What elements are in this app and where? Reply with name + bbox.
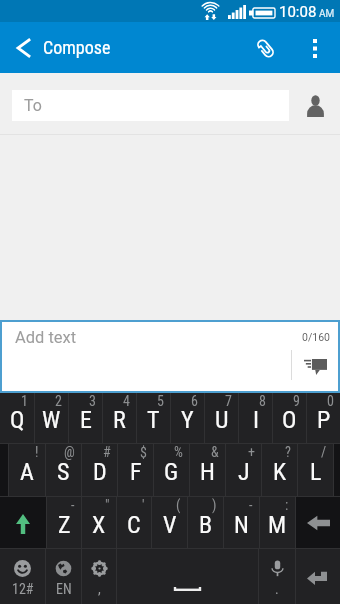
staticText: / (321, 444, 327, 460)
staticText: - (249, 497, 253, 513)
button[interactable]: 4 (103, 393, 136, 443)
button[interactable]: 6 (171, 393, 204, 443)
staticText: E (80, 406, 92, 434)
staticText: K (273, 458, 287, 486)
button[interactable]: - (224, 497, 259, 548)
staticText: 1 (21, 393, 28, 409)
button[interactable]: 0 (307, 393, 340, 443)
staticText: % (174, 444, 183, 460)
button[interactable]: % (154, 444, 189, 496)
staticText: 10:08 (279, 3, 317, 21)
staticText: N (234, 511, 249, 539)
button[interactable]: Attach (242, 22, 290, 73)
button[interactable]: Send message (291, 347, 339, 387)
button[interactable]: Shift (0, 497, 46, 548)
button[interactable]: Back (0, 22, 44, 73)
staticText: . (275, 581, 279, 597)
staticText: ( (176, 497, 181, 513)
button[interactable]: @ (46, 444, 81, 496)
button[interactable]: 2 (35, 393, 68, 443)
button[interactable]: ' (117, 497, 151, 548)
button[interactable]: 3 (69, 393, 102, 443)
staticText: , (98, 581, 101, 597)
button[interactable]: ) (188, 497, 223, 548)
button[interactable]: To (12, 90, 289, 121)
staticText: $ (140, 444, 147, 460)
staticText: H (200, 458, 215, 486)
button[interactable]: / (298, 444, 333, 496)
staticText: 9 (293, 393, 300, 409)
staticText: - (71, 497, 75, 513)
staticText: Compose (43, 37, 111, 58)
button[interactable]: & (190, 444, 225, 496)
button[interactable]: ( (152, 497, 187, 548)
staticText: 5 (157, 393, 164, 409)
staticText: J (238, 458, 250, 486)
button[interactable]: Language (46, 549, 81, 604)
button[interactable]: Enter (296, 549, 340, 604)
staticText: # (103, 444, 111, 460)
staticText: O (282, 406, 297, 434)
staticText: X (92, 511, 106, 539)
staticText: AM (319, 8, 335, 20)
staticText: ? (285, 444, 291, 460)
staticText: 4 (123, 393, 130, 409)
staticText: ' (142, 497, 145, 513)
button[interactable]: - (47, 497, 81, 548)
staticText: P (317, 406, 331, 434)
staticText: 0 (327, 393, 334, 409)
button[interactable]: Settings (82, 549, 116, 604)
button[interactable]: $ (118, 444, 153, 496)
button[interactable]: 8 (239, 393, 272, 443)
button[interactable]: Symbols (0, 549, 45, 604)
staticText: 6 (191, 393, 198, 409)
staticText: T (147, 406, 160, 434)
staticText: M (268, 511, 287, 539)
staticText: Y (181, 406, 194, 434)
button[interactable]: " (82, 497, 116, 548)
button[interactable]: Pick contact (291, 88, 340, 121)
button[interactable]: + (226, 444, 261, 496)
button[interactable]: : (260, 497, 295, 548)
staticText: G (164, 458, 179, 486)
button[interactable]: # (82, 444, 117, 496)
staticText: : (285, 497, 289, 513)
button[interactable]: 1 (0, 393, 34, 443)
staticText: 8 (259, 393, 266, 409)
staticText: 7 (225, 393, 232, 409)
staticText: B (199, 511, 213, 539)
staticText: V (163, 511, 177, 539)
staticText: & (211, 444, 219, 460)
staticText: S (57, 458, 70, 486)
button[interactable]: Backspace (296, 497, 340, 548)
staticText: I (253, 406, 259, 434)
button[interactable]: 5 (137, 393, 170, 443)
staticText: Add text (15, 328, 77, 347)
staticText: + (248, 444, 255, 460)
button[interactable]: ! (9, 444, 45, 496)
staticText: U (215, 406, 229, 434)
staticText: Q (10, 406, 25, 434)
button[interactable]: Voice input (259, 549, 295, 604)
staticText: @ (64, 444, 75, 460)
button[interactable]: Add text (2, 322, 338, 391)
staticText: ! (35, 444, 39, 460)
staticText: " (105, 497, 110, 513)
staticText: L (310, 458, 322, 486)
button[interactable]: 9 (273, 393, 306, 443)
staticText: F (130, 458, 142, 486)
staticText: W (42, 406, 61, 434)
staticText: C (127, 511, 141, 539)
staticText: 0/160 (302, 331, 330, 343)
staticText: ) (212, 497, 217, 513)
staticText: D (93, 458, 107, 486)
button[interactable]: 7 (205, 393, 238, 443)
staticText: EN (56, 581, 72, 597)
button[interactable]: Space (117, 549, 258, 604)
staticText: R (113, 406, 126, 434)
button[interactable]: More options (290, 22, 340, 73)
staticText: 2 (55, 393, 62, 409)
button[interactable]: ? (262, 444, 297, 496)
